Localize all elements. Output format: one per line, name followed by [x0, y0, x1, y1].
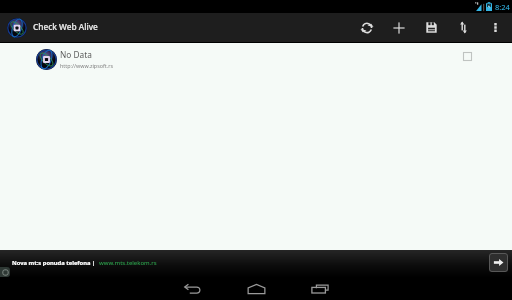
staticText: No Data	[60, 49, 92, 60]
staticText: http://www.zipsoft.rs	[60, 62, 114, 69]
button[interactable]: Home	[239, 277, 273, 300]
button[interactable]: No Data	[0, 43, 512, 75]
button[interactable]: Refresh	[351, 13, 383, 42]
button[interactable]: Ad info	[0, 267, 10, 277]
button[interactable]: Recents	[303, 277, 337, 300]
button[interactable]: Save	[415, 13, 447, 42]
button[interactable]: More options	[479, 13, 511, 42]
button[interactable]: Sort	[447, 13, 479, 42]
button[interactable]: Select	[463, 52, 472, 61]
button[interactable]: Open ad	[489, 253, 508, 272]
button[interactable]: Add	[383, 13, 415, 42]
staticText: Check Web Alive	[33, 21, 98, 32]
staticText: Nova mt:s ponuda telefona |	[12, 259, 96, 267]
staticText: www.mts.telekom.rs	[99, 259, 157, 267]
button[interactable]: Back	[175, 277, 209, 300]
staticText: 8:24	[495, 2, 510, 12]
